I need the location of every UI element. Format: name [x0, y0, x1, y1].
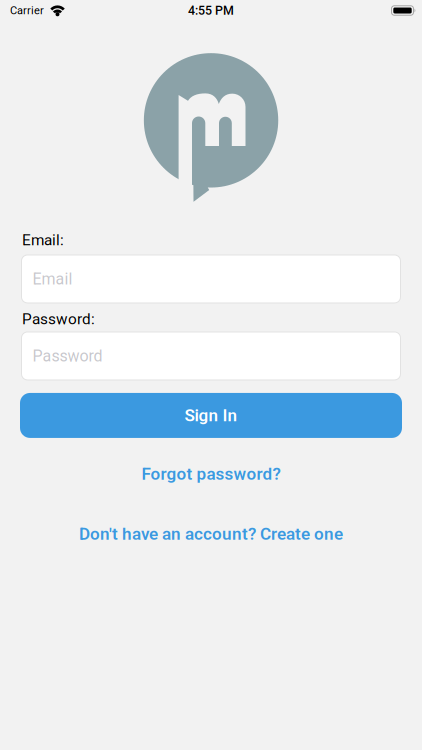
staticText: Email:: [22, 231, 64, 249]
staticText: Email: [32, 270, 72, 288]
button[interactable]: Don't have an account? Create one: [79, 524, 343, 544]
staticText: Password:: [22, 310, 95, 328]
staticText: Sign In: [184, 405, 237, 425]
button[interactable]: Forgot password?: [141, 464, 280, 484]
button[interactable]: Password: [0, 332, 422, 380]
staticText: 4:55 PM: [188, 3, 234, 18]
button[interactable]: Sign In: [0, 393, 422, 438]
staticText: Carrier: [10, 4, 44, 17]
staticText: Don't have an account? Create one: [79, 524, 343, 544]
staticText: Forgot password?: [141, 464, 280, 484]
staticText: Password: [32, 347, 102, 365]
button[interactable]: Email: [0, 255, 422, 303]
